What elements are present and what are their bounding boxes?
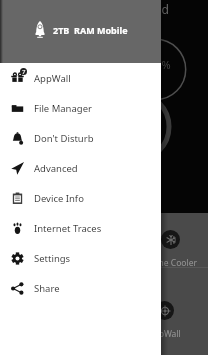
button[interactable]: Phone Cooler [143,230,197,269]
staticText: 7 [22,68,26,75]
button[interactable]: 7 [0,63,161,93]
button[interactable]: Share [0,273,161,303]
staticText: 68% [149,57,171,72]
button[interactable]: AppWall [148,301,181,340]
staticText: Phone Cooler [143,257,197,269]
button[interactable]: Phone Cooler [12,230,66,269]
button[interactable]: Don't Disturb [0,123,161,153]
button[interactable]: Advanced [0,153,161,183]
staticText: Settings [34,252,71,265]
staticText: Advanced [34,162,78,175]
button[interactable]: File Manager [0,93,161,123]
staticText: Device Info [34,192,84,205]
button[interactable]: Settings [0,243,161,273]
staticText: File Manager [34,102,92,115]
staticText: Share [34,282,60,295]
staticText: AppWall [148,328,181,340]
button[interactable]: Device Info [0,183,161,213]
button[interactable]: Phone Cooler [77,230,131,269]
staticText: RAM Used [111,1,169,17]
staticText: AppWall [34,72,71,85]
staticText: Phone Cooler [12,257,66,269]
button[interactable]: Internet Traces [0,213,161,243]
staticText: Internet Traces [34,222,102,235]
staticText: 2TB RAM Mobile [53,24,128,36]
staticText: Don't Disturb [34,132,94,145]
